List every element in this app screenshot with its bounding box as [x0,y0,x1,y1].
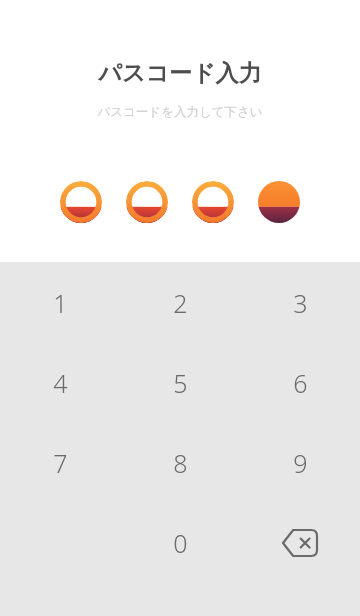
button[interactable]: 8 [120,423,240,503]
staticText: 7 [53,446,68,480]
button[interactable]: 9 [240,423,360,503]
staticText: 2 [173,286,188,320]
staticText: 5 [173,366,188,400]
button[interactable]: 7 [0,423,120,503]
button[interactable]: 1 [0,263,120,343]
button[interactable]: 5 [120,343,240,423]
staticText: 9 [293,446,308,480]
staticText: 6 [293,366,308,400]
staticText: 4 [53,366,68,400]
button[interactable]: 6 [240,343,360,423]
staticText: 3 [293,286,308,320]
staticText: 8 [173,446,188,480]
staticText: パスコードを入力して下さい [97,104,263,120]
staticText: 0 [173,526,188,560]
button[interactable]: Backspace [240,503,360,583]
button[interactable]: 3 [240,263,360,343]
button[interactable]: 0 [120,503,240,583]
staticText: パスコード入力 [98,59,262,88]
button[interactable]: 4 [0,343,120,423]
staticText: 1 [53,286,68,320]
button[interactable]: 2 [120,263,240,343]
